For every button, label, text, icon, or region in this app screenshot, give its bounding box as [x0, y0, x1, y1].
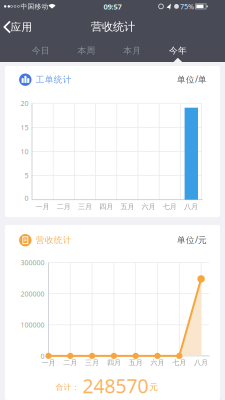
button[interactable]: 今年: [157, 38, 199, 62]
staticText: 5: [24, 171, 28, 180]
staticText: 20: [20, 98, 28, 108]
staticText: 一月: [41, 358, 55, 367]
staticText: 300000: [20, 258, 44, 267]
staticText: 0: [40, 351, 44, 361]
staticText: 单位/单: [177, 73, 207, 85]
staticText: 15: [20, 123, 28, 132]
staticText: 营收统计: [36, 235, 72, 246]
staticText: 六月: [142, 202, 156, 211]
staticText: 七月: [172, 358, 186, 367]
staticText: 09:57: [103, 1, 121, 12]
staticText: 今年: [169, 45, 187, 56]
button[interactable]: 返回 应用: [0, 13, 40, 38]
staticText: 四月: [99, 202, 113, 211]
staticText: 营收统计: [91, 20, 135, 34]
button[interactable]: 本周: [65, 38, 107, 62]
staticText: 元: [149, 382, 158, 393]
staticText: 75%: [180, 2, 194, 11]
staticText: 0: [24, 193, 28, 203]
staticText: 三月: [78, 202, 92, 211]
staticText: 二月: [57, 202, 71, 211]
staticText: 200000: [20, 289, 44, 298]
staticText: 248570: [82, 373, 148, 399]
staticText: 七月: [163, 202, 177, 211]
button[interactable]: 本月: [111, 38, 153, 62]
staticText: 三月: [85, 358, 99, 367]
staticText: 100000: [20, 320, 44, 330]
staticText: 二月: [63, 358, 77, 367]
staticText: 中国移动: [20, 2, 48, 11]
staticText: 五月: [120, 202, 134, 211]
staticText: 本月: [123, 45, 141, 56]
staticText: 八月: [194, 358, 208, 367]
staticText: 四月: [107, 358, 121, 367]
button[interactable]: 今日: [20, 38, 62, 62]
staticText: 一月: [36, 202, 50, 211]
staticText: 单位/元: [177, 234, 207, 246]
staticText: 六月: [150, 358, 164, 367]
staticText: 八月: [184, 202, 198, 211]
staticText: 应用: [10, 20, 32, 34]
staticText: 本周: [77, 45, 95, 56]
staticText: 工单统计: [36, 74, 72, 85]
staticText: 10: [20, 147, 28, 156]
staticText: 今日: [32, 45, 50, 56]
staticText: 合计：: [55, 382, 79, 392]
staticText: 五月: [129, 358, 143, 367]
